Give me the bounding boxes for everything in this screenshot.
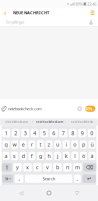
- button[interactable]: ,: [15, 174, 23, 183]
- button[interactable]: ⇧: [2, 163, 12, 171]
- button[interactable]: q: [2, 140, 9, 149]
- button[interactable]: Home: [42, 186, 56, 200]
- button[interactable]: 1: [2, 129, 10, 137]
- staticText: h: [47, 152, 50, 159]
- button[interactable]: .: [74, 174, 81, 183]
- button[interactable]: ü: [88, 140, 95, 149]
- button[interactable]: 8: [69, 129, 77, 137]
- button[interactable]: s: [11, 152, 18, 160]
- button[interactable]: 2: [12, 129, 20, 137]
- staticText: NEUE NACHRICHT: [13, 10, 49, 15]
- button[interactable]: Search: [25, 174, 72, 183]
- button[interactable]: d: [20, 152, 27, 160]
- button[interactable]: Back: [14, 186, 28, 200]
- staticText: j: [57, 152, 58, 159]
- staticText: s: [13, 152, 16, 159]
- button[interactable]: notebookchecks: [66, 118, 98, 125]
- button[interactable]: r: [28, 140, 35, 149]
- staticText: ä: [90, 152, 93, 159]
- staticText: 9: [81, 130, 84, 137]
- button[interactable]: Emoji: [76, 105, 83, 112]
- staticText: 2: [14, 130, 17, 137]
- button[interactable]: k: [63, 152, 70, 160]
- staticText: d: [22, 152, 25, 159]
- button[interactable]: ↵: [82, 174, 96, 183]
- button[interactable]: SENDEN: [85, 106, 95, 112]
- staticText: ü: [90, 141, 93, 148]
- button[interactable]: z: [45, 140, 52, 149]
- button[interactable]: ö: [80, 152, 87, 160]
- button[interactable]: a: [2, 152, 9, 160]
- staticText: o: [73, 141, 76, 148]
- button[interactable]: v: [43, 163, 52, 171]
- staticText: w: [13, 141, 17, 148]
- button[interactable]: m: [73, 163, 82, 171]
- staticText: a: [4, 152, 7, 159]
- staticText: SENDEN: [85, 106, 95, 111]
- button[interactable]: ⌫: [83, 163, 96, 171]
- button[interactable]: e: [20, 140, 27, 149]
- staticText: q: [4, 141, 7, 148]
- staticText: !#¬: [5, 176, 11, 181]
- staticText: e: [22, 141, 25, 148]
- button[interactable]: y: [13, 163, 22, 171]
- staticText: y: [16, 164, 19, 171]
- staticText: f: [31, 152, 33, 159]
- button[interactable]: u: [54, 140, 61, 149]
- button[interactable]: Recents: [70, 186, 84, 200]
- button[interactable]: 6: [50, 129, 58, 137]
- button[interactable]: ä: [88, 152, 95, 160]
- staticText: ◁: [19, 190, 23, 196]
- button[interactable]: w: [11, 140, 18, 149]
- staticText: 0: [90, 130, 93, 137]
- button[interactable]: j: [54, 152, 61, 160]
- staticText: 8: [71, 130, 74, 137]
- button[interactable]: f: [28, 152, 35, 160]
- staticText: l: [74, 152, 75, 159]
- button[interactable]: h: [45, 152, 52, 160]
- staticText: ⌫: [86, 164, 94, 170]
- staticText: n: [66, 164, 69, 171]
- button[interactable]: 5: [40, 129, 48, 137]
- staticText: ,: [18, 175, 19, 182]
- button[interactable]: notebookcheck.com: [33, 118, 65, 125]
- staticText: ‹: [4, 7, 6, 18]
- staticText: notebookchecks: [71, 120, 93, 124]
- staticText: p: [82, 141, 85, 148]
- button[interactable]: !#¬: [2, 174, 13, 183]
- staticText: Empfänger: [6, 19, 25, 25]
- staticText: 6: [52, 130, 55, 137]
- staticText: z: [47, 141, 50, 148]
- staticText: i: [66, 141, 67, 148]
- button[interactable]: 0: [88, 129, 96, 137]
- staticText: r: [31, 141, 33, 148]
- button[interactable]: 9: [78, 129, 86, 137]
- button[interactable]: o: [71, 140, 78, 149]
- button[interactable]: 4: [31, 129, 39, 137]
- button[interactable]: b: [53, 163, 62, 171]
- staticText: notebookcheck.com: [8, 106, 42, 111]
- button[interactable]: i: [63, 140, 70, 149]
- staticText: g: [39, 152, 42, 159]
- button[interactable]: Back: [0, 8, 10, 17]
- staticText: b: [56, 164, 59, 171]
- staticText: c: [36, 164, 39, 171]
- staticText: ⇧: [5, 164, 9, 170]
- button[interactable]: t: [37, 140, 44, 149]
- button[interactable]: c: [33, 163, 42, 171]
- staticText: ö: [82, 152, 85, 159]
- button[interactable]: l: [71, 152, 78, 160]
- button[interactable]: 3: [21, 129, 29, 137]
- button[interactable]: ebookcheck.com: [0, 118, 33, 125]
- staticText: k: [65, 152, 68, 159]
- button[interactable]: g: [37, 152, 44, 160]
- button[interactable]: Attach: [0, 104, 8, 114]
- button[interactable]: Contacts: [86, 17, 96, 26]
- button[interactable]: n: [63, 163, 72, 171]
- button[interactable]: More options: [87, 8, 98, 17]
- button[interactable]: x: [23, 163, 32, 171]
- staticText: m: [75, 164, 80, 171]
- staticText: ebookcheck.com: [5, 120, 27, 124]
- button[interactable]: p: [80, 140, 87, 149]
- button[interactable]: 7: [59, 129, 67, 137]
